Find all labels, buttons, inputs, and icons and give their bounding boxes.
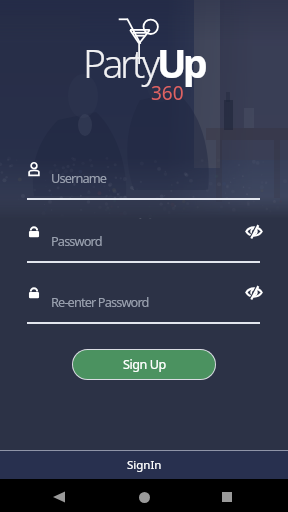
staticText: SignIn [127,457,162,473]
staticText: Username [51,169,107,186]
button[interactable] [27,292,260,322]
button[interactable]: Back [45,483,73,511]
staticText: 360 [151,80,184,106]
button[interactable]: SignIn [0,451,288,479]
button[interactable]: Show password [242,280,266,304]
button[interactable] [27,231,260,261]
staticText: Re-enter Password [51,293,149,310]
staticText: Up [157,36,205,89]
staticText: Password [51,232,102,249]
button[interactable]: Sign Up [73,350,215,379]
staticText: Sign Up [123,356,166,373]
button[interactable]: Home [130,483,158,511]
button[interactable]: Show password [242,219,266,243]
staticText: Party [83,36,157,89]
button[interactable]: Recent apps [213,483,241,511]
button[interactable] [27,168,260,198]
